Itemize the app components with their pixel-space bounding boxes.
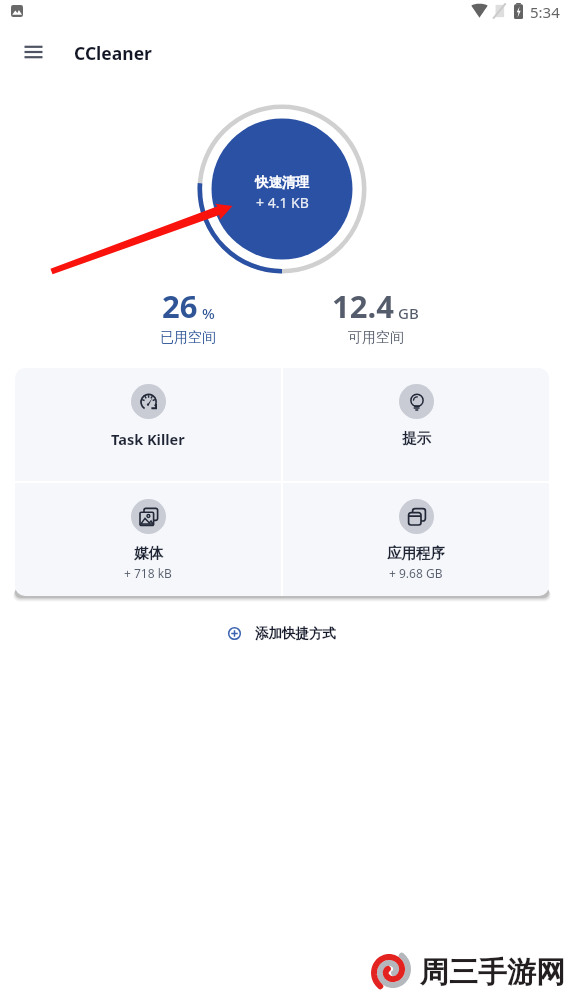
staticText: % [202,303,215,323]
button[interactable]: 添加快捷方式 [220,617,344,650]
staticText: 媒体 [134,544,163,562]
button[interactable]: 快速清理 [197,104,367,274]
staticText: + 718 kB [124,565,172,581]
staticText: CCleaner [74,41,152,65]
staticText: 周三手游网 [420,954,564,991]
button[interactable]: 提示 [283,368,549,481]
staticText: + 4.1 KB [256,193,309,212]
staticText: 快速清理 [255,174,309,191]
button[interactable]: Menu [18,36,50,68]
button[interactable]: 应用程序 [283,483,549,596]
staticText: 5:34 [530,2,560,22]
staticText: 已用空间 [160,329,216,347]
staticText: 添加快捷方式 [255,625,336,642]
staticText: 可用空间 [348,329,404,347]
staticText: Task Killer [111,429,185,449]
staticText: + 9.68 GB [389,565,443,581]
button[interactable]: Task Killer [15,368,281,481]
staticText: 应用程序 [387,544,445,562]
button[interactable]: 媒体 [15,483,281,596]
staticText: 26 [162,285,198,327]
staticText: 12.4 [332,285,394,327]
staticText: 提示 [402,429,431,447]
staticText: GB [398,303,419,323]
